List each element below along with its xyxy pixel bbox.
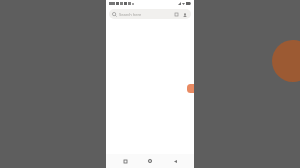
button[interactable]: Floating action: [187, 84, 194, 93]
button[interactable]: Back: [169, 155, 181, 167]
button[interactable]: Home: [144, 155, 156, 167]
button[interactable]: Recent apps: [119, 155, 131, 167]
button[interactable]: Account: [181, 11, 188, 18]
staticText: Search here: [119, 12, 173, 17]
button[interactable]: Voice search: [173, 11, 179, 17]
button[interactable]: Search here: [109, 9, 191, 19]
